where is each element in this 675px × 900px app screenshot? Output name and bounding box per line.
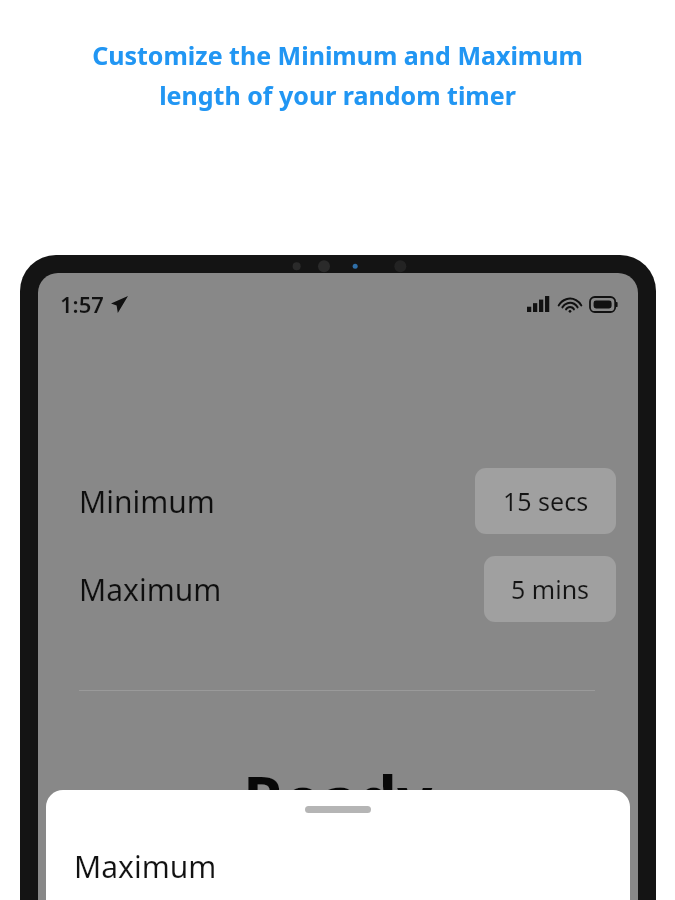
button[interactable]: 15 secs xyxy=(475,468,616,534)
staticText: Customize the Minimum and Maximum xyxy=(92,38,583,72)
staticText: Ready xyxy=(243,756,433,840)
staticText: Maximum xyxy=(74,846,217,887)
staticText: 5 mins xyxy=(511,572,590,606)
button[interactable]: Minimum xyxy=(38,465,638,537)
button[interactable]: 5 mins xyxy=(484,556,616,622)
staticText: Minimum xyxy=(79,481,215,522)
staticText: 1:57 xyxy=(60,289,104,319)
staticText: Maximum xyxy=(79,569,222,610)
staticText: 15 secs xyxy=(503,484,589,518)
staticText: length of your random timer xyxy=(159,78,516,112)
button[interactable]: Maximum xyxy=(38,553,638,625)
